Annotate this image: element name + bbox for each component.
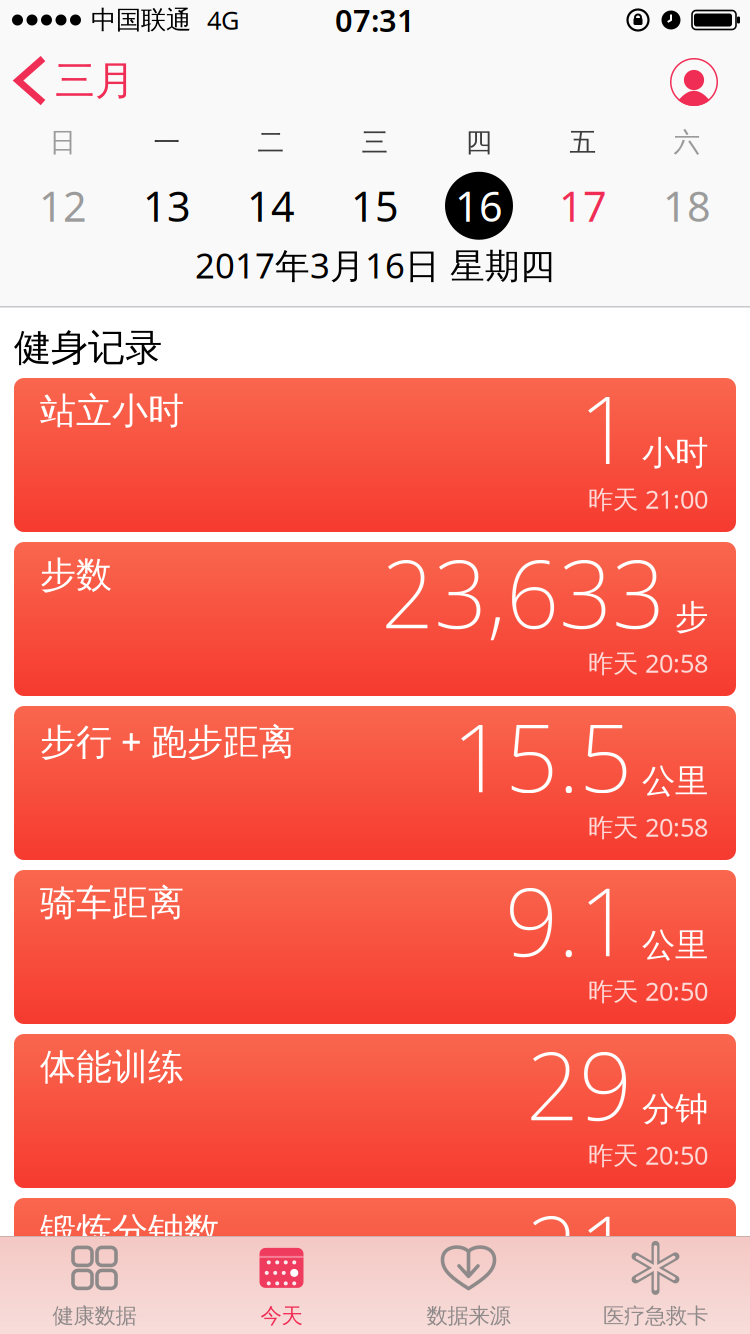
button[interactable]: 步数	[14, 542, 736, 696]
staticText: 今天	[260, 1303, 302, 1329]
button[interactable]: 今天	[188, 1238, 375, 1334]
staticText: 二	[257, 126, 284, 159]
staticText: 昨天 21:00	[588, 482, 708, 516]
staticText: 16	[455, 178, 503, 233]
staticText: 4G	[207, 3, 239, 37]
staticText: 分钟	[642, 1253, 708, 1293]
staticText: 21	[526, 1186, 632, 1310]
staticText: 15.5	[452, 694, 632, 818]
staticText: 公里	[642, 925, 708, 965]
button[interactable]: 12	[11, 172, 115, 240]
button[interactable]: 体能训练	[14, 1034, 736, 1188]
staticText: 昨天 20:58	[588, 810, 708, 844]
staticText: 六	[673, 126, 700, 159]
button[interactable]: 健康数据	[1, 1238, 188, 1334]
staticText: 18	[663, 178, 711, 233]
button[interactable]: 13	[115, 172, 219, 240]
button[interactable]: 16	[427, 172, 531, 240]
staticText: 日	[49, 126, 76, 159]
button[interactable]: 医疗急救卡	[562, 1238, 749, 1334]
staticText: 17	[559, 178, 607, 233]
button[interactable]: 17	[531, 172, 635, 240]
staticText: 23,633	[381, 530, 665, 654]
button[interactable]: 三月	[0, 56, 135, 105]
staticText: 四	[465, 126, 492, 159]
staticText: 五	[569, 126, 596, 159]
staticText: 体能训练	[40, 1045, 184, 1089]
staticText: 14	[247, 178, 295, 233]
button[interactable]: 锻炼分钟数	[14, 1198, 736, 1334]
staticText: 步行 + 跑步距离	[40, 717, 295, 765]
staticText: 9.1	[505, 858, 632, 982]
button[interactable]: 15	[323, 172, 427, 240]
staticText: 步数	[40, 553, 112, 597]
button[interactable]: 站立小时	[14, 378, 736, 532]
staticText: 12	[39, 178, 87, 233]
staticText: 一	[153, 126, 180, 159]
staticText: 1	[579, 366, 632, 490]
staticText: 三月	[55, 56, 135, 105]
button[interactable]: 步行 + 跑步距离	[14, 706, 736, 860]
staticText: 昨天 20:48	[588, 1302, 708, 1334]
staticText: 数据来源	[426, 1303, 510, 1329]
staticText: 29	[526, 1022, 632, 1146]
staticText: 三	[361, 126, 388, 159]
staticText: 13	[143, 178, 191, 233]
staticText: 健康数据	[52, 1303, 136, 1329]
button[interactable]: 数据来源	[375, 1238, 562, 1334]
staticText: 医疗急救卡	[603, 1303, 708, 1329]
staticText: 昨天 20:50	[588, 1138, 708, 1172]
staticText: 07:31	[335, 0, 415, 40]
staticText: 骑车距离	[40, 881, 184, 925]
staticText: 步	[675, 597, 708, 637]
staticText: 中国联通	[91, 4, 191, 35]
staticText: 15	[351, 178, 399, 233]
staticText: 健身记录	[14, 325, 162, 371]
button[interactable]: 骑车距离	[14, 870, 736, 1024]
staticText: 公里	[642, 761, 708, 801]
staticText: 昨天 20:50	[588, 974, 708, 1008]
staticText: 小时	[642, 433, 708, 473]
staticText: 锻炼分钟数	[40, 1209, 220, 1253]
staticText: 站立小时	[40, 389, 184, 433]
staticText: 分钟	[642, 1089, 708, 1129]
staticText: 2017年3月16日 星期四	[195, 242, 555, 288]
button[interactable]: 14	[219, 172, 323, 240]
staticText: 昨天 20:58	[588, 646, 708, 680]
button[interactable]	[670, 58, 718, 106]
button[interactable]: 18	[635, 172, 739, 240]
